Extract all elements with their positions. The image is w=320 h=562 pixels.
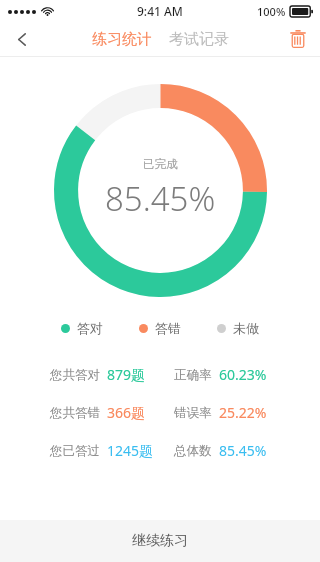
staticText: 答对 xyxy=(77,320,103,336)
staticText: 60.23% xyxy=(219,365,267,384)
button[interactable]: 继续练习 xyxy=(0,520,320,562)
staticText: 考试记录 xyxy=(169,30,229,49)
button[interactable]: 未做 xyxy=(215,318,261,338)
staticText: 您已答过 xyxy=(50,443,100,459)
staticText: 25.22% xyxy=(219,403,267,422)
staticText: 85.45% xyxy=(219,441,267,460)
button[interactable]: 答错 xyxy=(137,318,183,338)
staticText: 85.45% xyxy=(105,176,216,221)
staticText: 错误率 xyxy=(174,405,212,421)
staticText: 正确率 xyxy=(174,367,212,383)
button[interactable]: 考试记录 xyxy=(165,26,233,53)
staticText: 9:41 AM xyxy=(137,3,183,19)
staticText: 您共答错 xyxy=(50,405,100,421)
button[interactable]: Delete xyxy=(276,22,320,56)
staticText: 879题 xyxy=(107,365,146,384)
staticText: 练习统计 xyxy=(92,30,152,49)
button[interactable]: Back xyxy=(0,22,44,56)
staticText: 100% xyxy=(257,4,286,19)
staticText: 总体数 xyxy=(174,443,212,459)
staticText: 答错 xyxy=(155,320,181,336)
staticText: 您共答对 xyxy=(50,367,100,383)
staticText: 1245题 xyxy=(107,441,154,460)
staticText: 366题 xyxy=(107,403,146,422)
button[interactable]: 练习统计 xyxy=(88,26,156,53)
staticText: 已完成 xyxy=(143,157,178,171)
button[interactable]: 答对 xyxy=(59,318,105,338)
staticText: 继续练习 xyxy=(132,532,188,550)
staticText: 未做 xyxy=(233,320,259,336)
